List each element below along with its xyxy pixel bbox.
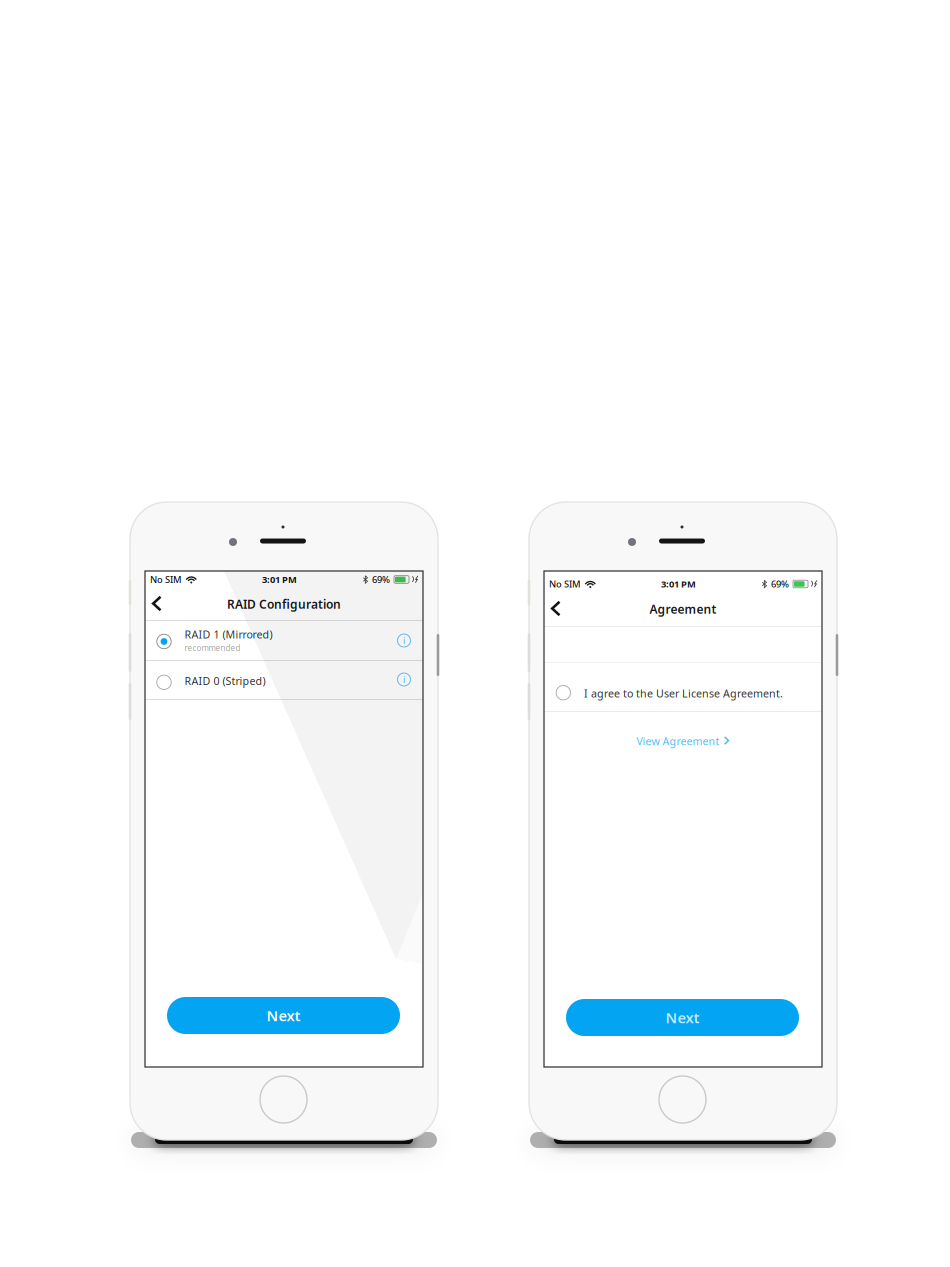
button[interactable]: Next	[566, 999, 799, 1036]
button[interactable]: Back	[544, 594, 571, 624]
button[interactable]: RAID 0 (Striped)	[145, 660, 423, 699]
staticText: Next	[266, 1006, 300, 1025]
staticText: I agree to the User License Agreement.	[584, 686, 783, 700]
staticText: i	[403, 634, 405, 646]
staticText: recommended	[184, 642, 240, 653]
staticText: 69%	[372, 573, 390, 586]
staticText: No SIM	[549, 578, 581, 590]
staticText: View Agreement	[636, 734, 719, 748]
button[interactable]: Next	[167, 997, 400, 1034]
staticText: 3:01 PM	[262, 573, 297, 586]
button[interactable]: RAID 1 (Mirrored)	[145, 620, 423, 660]
staticText: i	[403, 673, 405, 685]
staticText: 3:01 PM	[661, 578, 696, 590]
staticText: RAID 0 (Striped)	[184, 674, 265, 688]
button[interactable]: I agree to the User License Agreement.	[544, 662, 822, 711]
button[interactable]: Back	[145, 589, 172, 619]
staticText: Agreement	[649, 601, 716, 617]
staticText: No SIM	[150, 573, 182, 586]
staticText: Next	[665, 1008, 699, 1027]
staticText: 69%	[771, 578, 789, 590]
staticText: RAID Configuration	[227, 596, 341, 612]
staticText: RAID 1 (Mirrored)	[184, 627, 272, 641]
button[interactable]: View Agreement	[544, 729, 822, 753]
